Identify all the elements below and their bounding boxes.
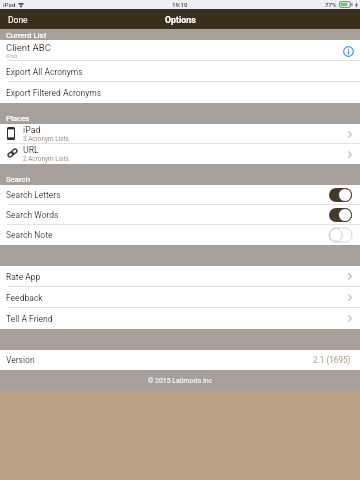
button[interactable]: Rate App <box>0 266 360 287</box>
staticText: © 2015 Laümoda Inc <box>148 377 213 385</box>
staticText: Client ABC <box>6 42 51 53</box>
staticText: 19:10 <box>172 1 188 8</box>
button[interactable]: Export All Acronyms <box>0 61 360 82</box>
button[interactable]: Export Filtered Acronyms <box>0 82 360 103</box>
staticText: Options <box>165 15 196 25</box>
button[interactable]: More info <box>340 43 356 59</box>
staticText: Search Words <box>6 210 329 220</box>
button[interactable]: Feedback <box>0 287 360 308</box>
staticText: Places <box>6 114 30 123</box>
staticText: Version <box>6 355 313 365</box>
button[interactable]: Search Note <box>0 225 360 245</box>
staticText: Search Note <box>6 230 329 240</box>
button[interactable]: Done <box>0 9 34 29</box>
button[interactable]: Search Words <box>0 205 360 225</box>
staticText: iPad <box>23 125 41 135</box>
staticText: Export All Acronyms <box>6 67 360 77</box>
staticText: Rate App <box>6 272 348 282</box>
staticText: iPad <box>3 1 16 8</box>
staticText: Export Filtered Acronyms <box>6 88 360 98</box>
button[interactable]: iPad <box>0 124 360 144</box>
staticText: iPad <box>6 53 17 59</box>
button[interactable]: Tell A Friend <box>0 308 360 329</box>
button[interactable]: Toggle on <box>329 188 352 202</box>
button[interactable]: Client ABC <box>0 40 360 61</box>
staticText: Search <box>6 175 30 184</box>
button[interactable]: Toggle on <box>329 208 352 222</box>
button[interactable]: Toggle off <box>329 228 352 242</box>
staticText: 2.1 (1695) <box>313 355 351 365</box>
button[interactable]: URL <box>0 144 360 164</box>
staticText: Current List <box>6 31 47 40</box>
button[interactable]: Search Letters <box>0 185 360 205</box>
staticText: Feedback <box>6 293 348 303</box>
staticText: Search Letters <box>6 190 329 200</box>
staticText: 77% <box>325 1 337 8</box>
button[interactable]: Version <box>0 350 360 370</box>
staticText: Tell A Friend <box>6 314 348 324</box>
staticText: 2 Acronym Lists <box>23 155 69 163</box>
staticText: 3 Acronym Lists <box>23 135 69 143</box>
staticText: URL <box>23 145 39 155</box>
staticText: Done <box>8 15 28 25</box>
